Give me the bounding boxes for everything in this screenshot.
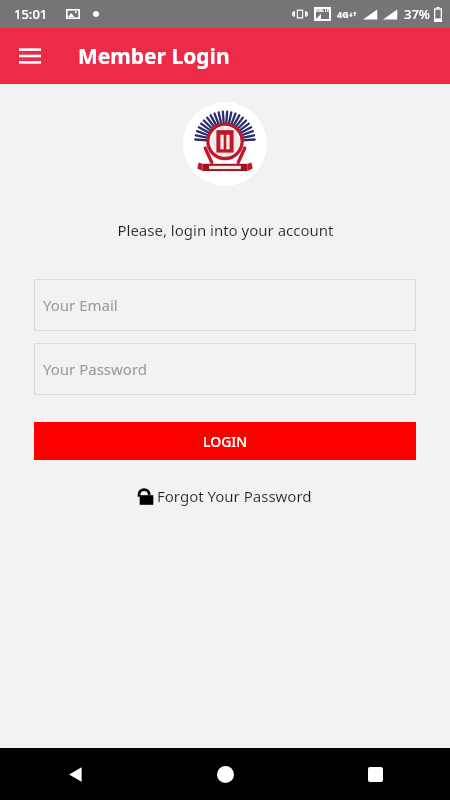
- staticText: 37%: [404, 5, 430, 23]
- staticText: Your Password: [43, 359, 148, 379]
- staticText: Please, login into your account: [117, 220, 334, 240]
- staticText: VoLTE: [315, 7, 330, 14]
- staticText: Member Login: [78, 42, 230, 71]
- button[interactable]: Your Email: [34, 279, 416, 331]
- staticText: Forgot Your Password: [157, 486, 312, 506]
- staticText: LOGIN: [203, 432, 248, 451]
- staticText: 15:01: [14, 5, 48, 23]
- button[interactable]: Forgot Your Password: [132, 483, 318, 509]
- staticText: Your Email: [43, 295, 118, 315]
- button[interactable]: Open navigation menu: [8, 34, 52, 78]
- button[interactable]: Your Password: [34, 343, 416, 395]
- staticText: 4G: [337, 8, 349, 20]
- button[interactable]: Recent apps: [300, 748, 450, 800]
- button[interactable]: Back: [0, 748, 150, 800]
- button[interactable]: Home: [150, 748, 300, 800]
- button[interactable]: LOGIN: [34, 422, 416, 460]
